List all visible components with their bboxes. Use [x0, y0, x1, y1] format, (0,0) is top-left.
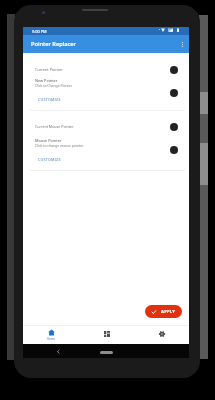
staticText: Click to Change Pointer — [35, 83, 73, 88]
staticText: CUSTOMIZE — [38, 97, 61, 102]
staticText: Current Mouse Pointer — [35, 124, 74, 129]
staticText: New Pointer — [35, 78, 58, 83]
button[interactable]: CUSTOMIZE — [36, 96, 63, 103]
staticText: APPLY — [161, 309, 176, 315]
button[interactable]: CUSTOMIZE — [36, 156, 63, 163]
button[interactable]: Settings — [134, 325, 189, 344]
button[interactable]: Home — [23, 325, 79, 344]
other: Back — [56, 349, 61, 354]
button[interactable]: Current Mouse Pointer — [29, 114, 185, 170]
staticText: Click to change mouse pointer — [35, 143, 84, 148]
staticText: 9:00 PM — [32, 29, 47, 34]
button[interactable]: More options — [175, 35, 189, 53]
button[interactable]: Collections — [79, 325, 134, 344]
staticText: Pointer Replacer — [31, 40, 77, 48]
staticText: CUSTOMIZE — [38, 157, 61, 162]
button[interactable]: Current Pointer — [29, 59, 185, 110]
staticText: Mouse Pointer — [35, 138, 62, 143]
button[interactable]: APPLY — [145, 305, 182, 318]
staticText: Home — [47, 337, 55, 341]
staticText: Current Pointer — [35, 67, 63, 72]
